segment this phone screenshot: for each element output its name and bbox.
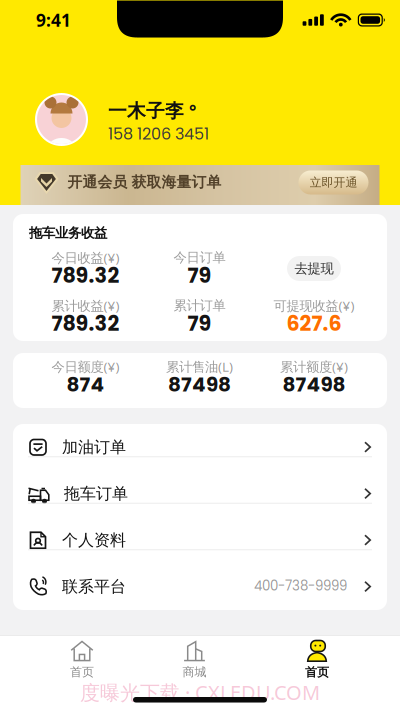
staticText: 627.6 [286,309,341,338]
staticText: 首页 [70,665,94,679]
staticText: 开通会员 获取海量订单 [67,173,221,191]
staticText: 今日订单 [173,249,225,266]
staticText: 商城 [182,665,206,679]
staticText: 874 [66,370,104,398]
staticText: 度曝光下载 · CXLEDU.COM [80,679,320,706]
staticText: 今日收益(¥) [51,249,119,266]
staticText: 首页 [305,665,329,680]
button[interactable]: 开通会员 获取海量订单 [20,165,379,205]
staticText: 个人资料 [62,530,126,550]
staticText: 158 1206 3451 [108,123,209,145]
staticText: 一木子李 [108,99,184,122]
staticText: 789.32 [51,261,119,290]
staticText: 9:41 [36,8,71,31]
button[interactable]: 去提现 [287,256,341,281]
staticText: 789.32 [51,309,119,338]
button[interactable]: 拖车订单 [13,470,387,517]
staticText: ° [189,99,196,122]
button[interactable]: 首页 [22,640,142,679]
staticText: 去提现 [294,260,333,277]
staticText: 累计订单 [173,297,225,314]
button[interactable]: 首页 [247,640,387,680]
staticText: 87498 [168,370,231,398]
staticText: 联系平台 [62,577,126,597]
staticText: 79 [187,309,211,338]
staticText: 拖车业务收益 [29,225,107,241]
button[interactable]: 个人资料 [13,517,387,563]
staticText: 87498 [282,370,345,398]
staticText: 立即开通 [309,175,357,190]
button[interactable]: 加油订单 [13,424,387,470]
staticText: 加油订单 [62,437,126,457]
staticText: 可提现收益(¥) [273,297,354,314]
staticText: 拖车订单 [64,484,128,504]
staticText: 累计额度(¥) [280,358,348,375]
staticText: 累计售油(L) [166,358,233,375]
staticText: 79 [187,261,211,290]
button[interactable]: 联系平台 [13,563,387,610]
staticText: 400-738-9999 [254,576,347,595]
staticText: 累计收益(¥) [51,297,119,314]
button[interactable]: 商城 [142,640,247,679]
staticText: 今日额度(¥) [51,358,119,375]
